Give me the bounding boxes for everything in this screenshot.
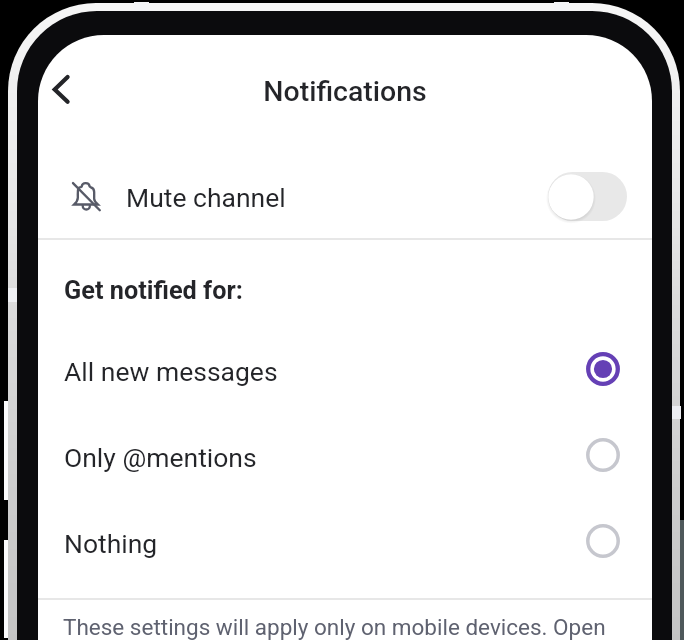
button[interactable]: Mute channel [38, 155, 652, 238]
staticText: Get notified for: [64, 276, 243, 306]
button[interactable]: Nothing [38, 490, 652, 576]
staticText: Nothing [64, 528, 158, 559]
staticText: Notifications [38, 75, 652, 108]
button[interactable]: Back [40, 61, 100, 121]
staticText: These settings will apply only on mobile… [63, 614, 606, 640]
button[interactable]: Only @mentions [38, 404, 652, 490]
staticText: Only @mentions [64, 442, 257, 473]
button[interactable]: All new messages [38, 318, 652, 404]
staticText: Mute channel [126, 182, 286, 213]
staticText: All new messages [64, 356, 278, 387]
